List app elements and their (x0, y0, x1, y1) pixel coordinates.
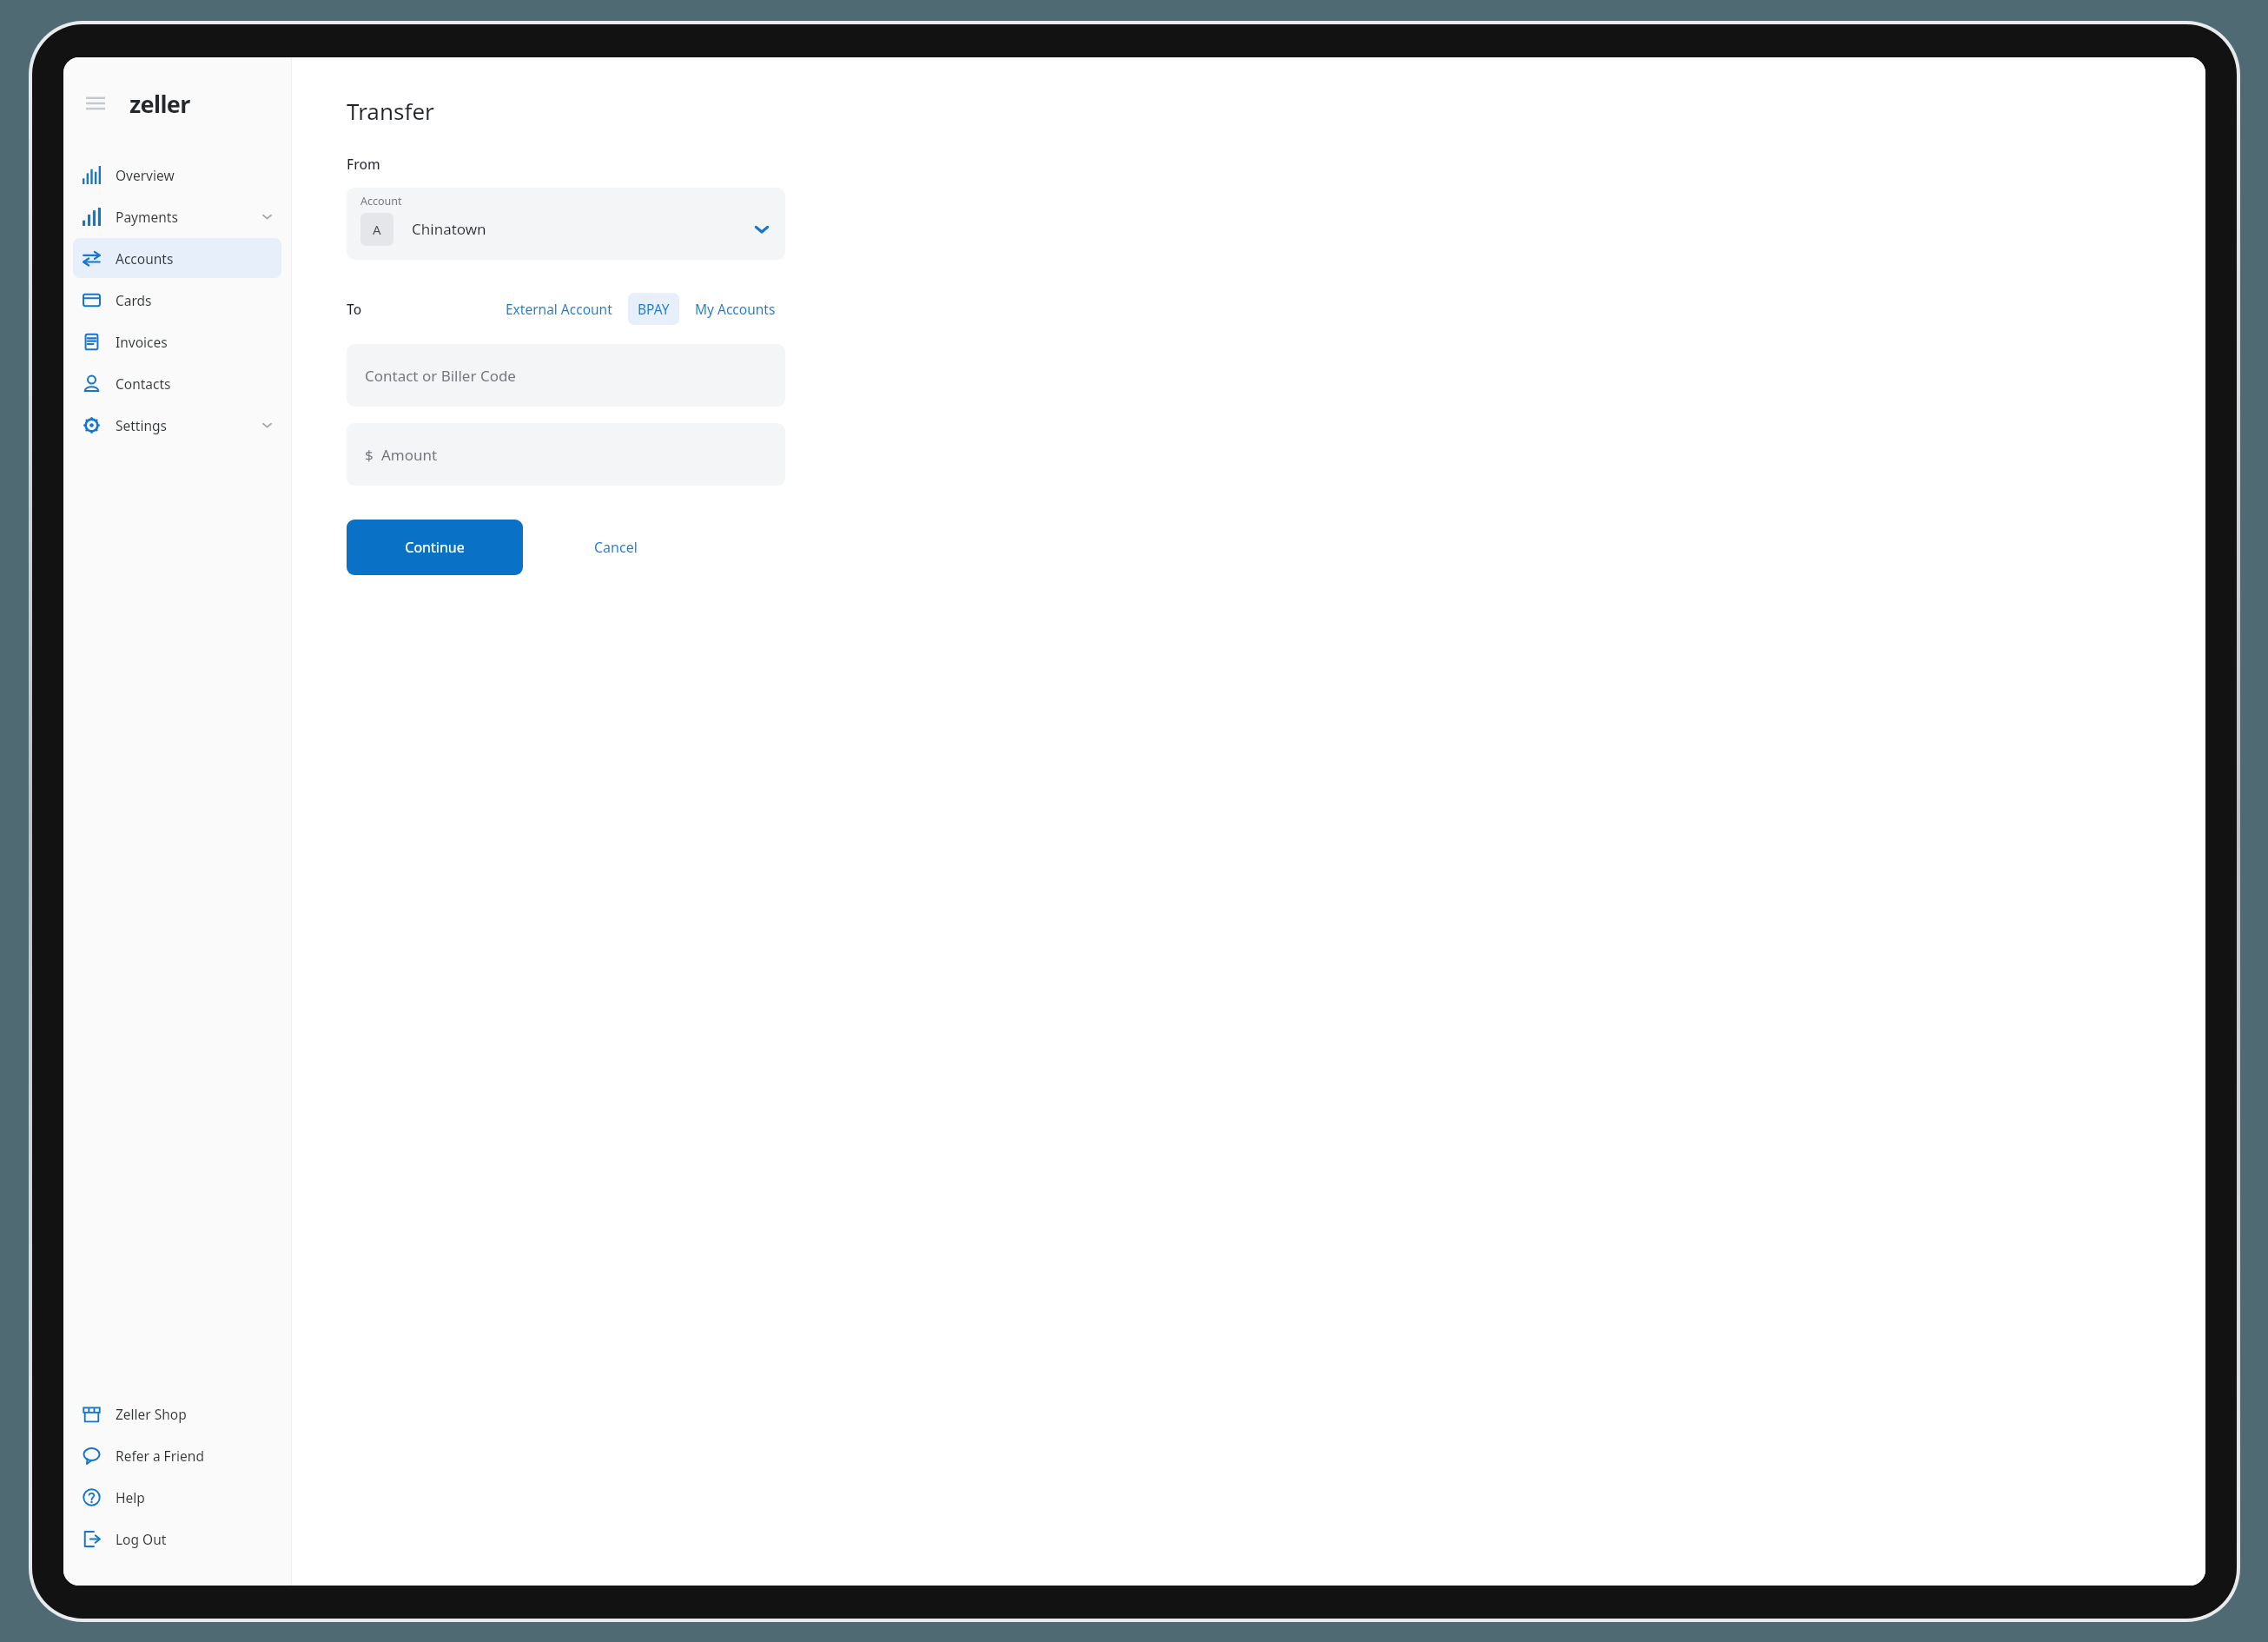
button[interactable]: Log Out (73, 1519, 281, 1559)
button[interactable]: Cards (73, 280, 281, 320)
staticText: My Accounts (695, 300, 776, 318)
staticText: Help (116, 1488, 145, 1506)
staticText: From (347, 155, 380, 173)
staticText: Transfer (347, 96, 434, 126)
button[interactable]: Menu (79, 87, 112, 120)
staticText: Accounts (116, 249, 174, 268)
staticText: Zeller Shop (116, 1405, 187, 1423)
button[interactable]: Help (73, 1477, 281, 1517)
staticText: Cards (116, 291, 152, 309)
button[interactable]: Refer a Friend (73, 1435, 281, 1475)
button[interactable]: External Account (496, 293, 622, 325)
staticText: zeller (129, 88, 190, 120)
staticText: Refer a Friend (116, 1447, 204, 1465)
staticText: Overview (116, 166, 175, 184)
staticText: Continue (405, 538, 465, 557)
staticText: Account (360, 194, 402, 209)
button[interactable]: Contact or Biller Code (347, 344, 785, 407)
staticText: Contacts (116, 374, 171, 393)
button[interactable]: Overview (73, 155, 281, 195)
staticText: Payments (116, 208, 178, 226)
staticText: Chinatown (412, 219, 486, 239)
staticText: Invoices (116, 333, 168, 351)
staticText: Contact or Biller Code (365, 366, 516, 386)
button[interactable]: Zeller Shop (73, 1394, 281, 1433)
button[interactable]: Account (347, 188, 785, 260)
button[interactable]: Cancel (580, 520, 651, 575)
button[interactable]: Payments (73, 196, 281, 236)
staticText: BPAY (638, 300, 670, 318)
staticText: Settings (116, 416, 167, 434)
button[interactable]: Contacts (73, 363, 281, 403)
button[interactable]: Settings (73, 405, 281, 445)
staticText: To (347, 300, 362, 318)
staticText: Amount (381, 445, 438, 465)
button[interactable]: $ (347, 423, 785, 486)
staticText: Log Out (116, 1530, 167, 1548)
button[interactable]: Continue (347, 520, 523, 575)
staticText: Cancel (594, 538, 638, 557)
button[interactable]: BPAY (628, 293, 679, 325)
staticText: A (373, 221, 381, 238)
button[interactable]: My Accounts (685, 293, 785, 325)
button[interactable]: Accounts (73, 238, 281, 278)
staticText: $ (365, 445, 374, 465)
staticText: External Account (506, 300, 612, 318)
button[interactable]: Invoices (73, 321, 281, 361)
